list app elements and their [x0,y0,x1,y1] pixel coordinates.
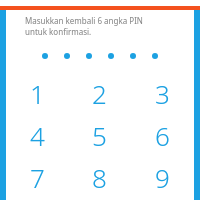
button[interactable]: Digit 1 [6,72,68,114]
staticText: 3 [155,76,170,111]
staticText: 2 [92,76,107,111]
button[interactable]: Digit 3 [131,72,194,114]
staticText: 5 [92,118,107,153]
staticText: 1 [30,76,45,111]
button[interactable]: Digit 9 [131,156,194,198]
staticText: 8 [92,160,107,195]
button[interactable]: Digit 2 [68,72,131,114]
staticText: 6 [155,118,170,153]
staticText: Masukkan kembali 6 angka PIN untuk konfi… [25,15,143,37]
button[interactable]: Digit 7 [6,156,68,198]
button[interactable]: Digit 6 [131,114,194,156]
button[interactable]: Digit 8 [68,156,131,198]
staticText: 7 [30,160,45,195]
staticText: 4 [30,118,45,153]
button[interactable]: Digit 4 [6,114,68,156]
button[interactable]: Digit 5 [68,114,131,156]
staticText: 9 [155,160,170,195]
